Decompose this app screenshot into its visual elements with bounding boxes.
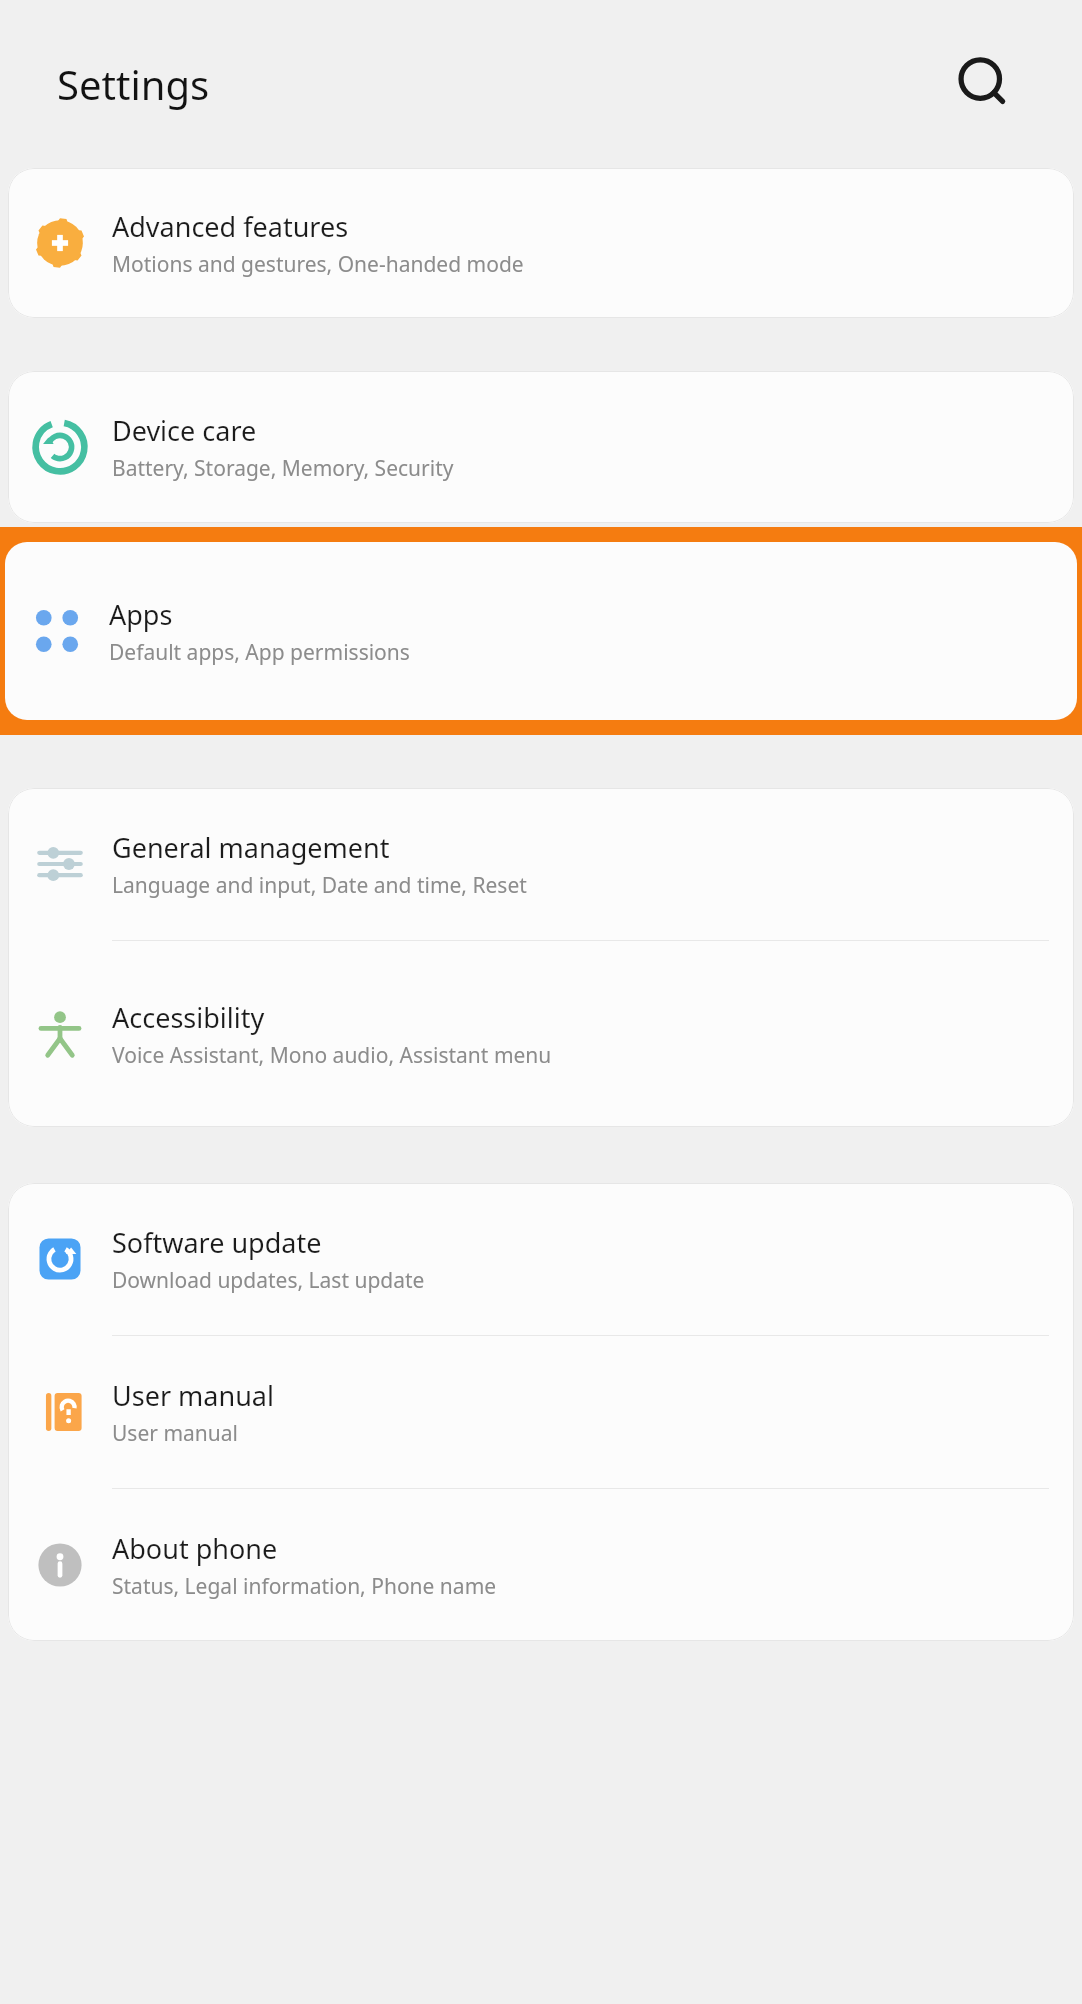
button[interactable]: Software update [8, 1183, 1074, 1335]
other: User manual [33, 1385, 87, 1439]
button[interactable]: Search [938, 38, 1030, 130]
staticText: User manual [112, 1377, 274, 1414]
staticText: Download updates, Last update [112, 1266, 425, 1295]
button[interactable]: Device care [8, 371, 1074, 523]
staticText: Advanced features [112, 208, 349, 245]
staticText: Voice Assistant, Mono audio, Assistant m… [112, 1041, 552, 1070]
other: Device care [31, 418, 89, 476]
staticText: Battery, Storage, Memory, Security [112, 454, 454, 483]
staticText: General management [112, 829, 390, 866]
other: General management [32, 836, 88, 892]
staticText: Status, Legal information, Phone name [112, 1572, 497, 1601]
staticText: Motions and gestures, One-handed mode [112, 250, 524, 279]
other: Accessibility [32, 1006, 88, 1062]
other: Apps [30, 604, 84, 658]
staticText: Apps [109, 596, 173, 633]
button[interactable]: Advanced features [8, 168, 1074, 318]
button[interactable]: Apps [5, 542, 1077, 720]
button[interactable]: General management [8, 788, 1074, 940]
staticText: Device care [112, 412, 257, 449]
button[interactable]: User manual [8, 1336, 1074, 1488]
button[interactable]: Apps [5, 542, 1077, 720]
staticText: About phone [112, 1530, 278, 1567]
other: About phone [33, 1538, 87, 1592]
other: Advanced features [33, 216, 87, 270]
button[interactable]: About phone [8, 1489, 1074, 1641]
staticText: User manual [112, 1419, 238, 1448]
button[interactable]: Accessibility [8, 941, 1074, 1127]
staticText: Language and input, Date and time, Reset [112, 871, 527, 900]
staticText: Software update [112, 1224, 322, 1261]
staticText: Accessibility [112, 999, 265, 1036]
other: Software update [33, 1232, 87, 1286]
staticText: Default apps, App permissions [109, 638, 410, 667]
staticText: Settings [57, 57, 210, 111]
